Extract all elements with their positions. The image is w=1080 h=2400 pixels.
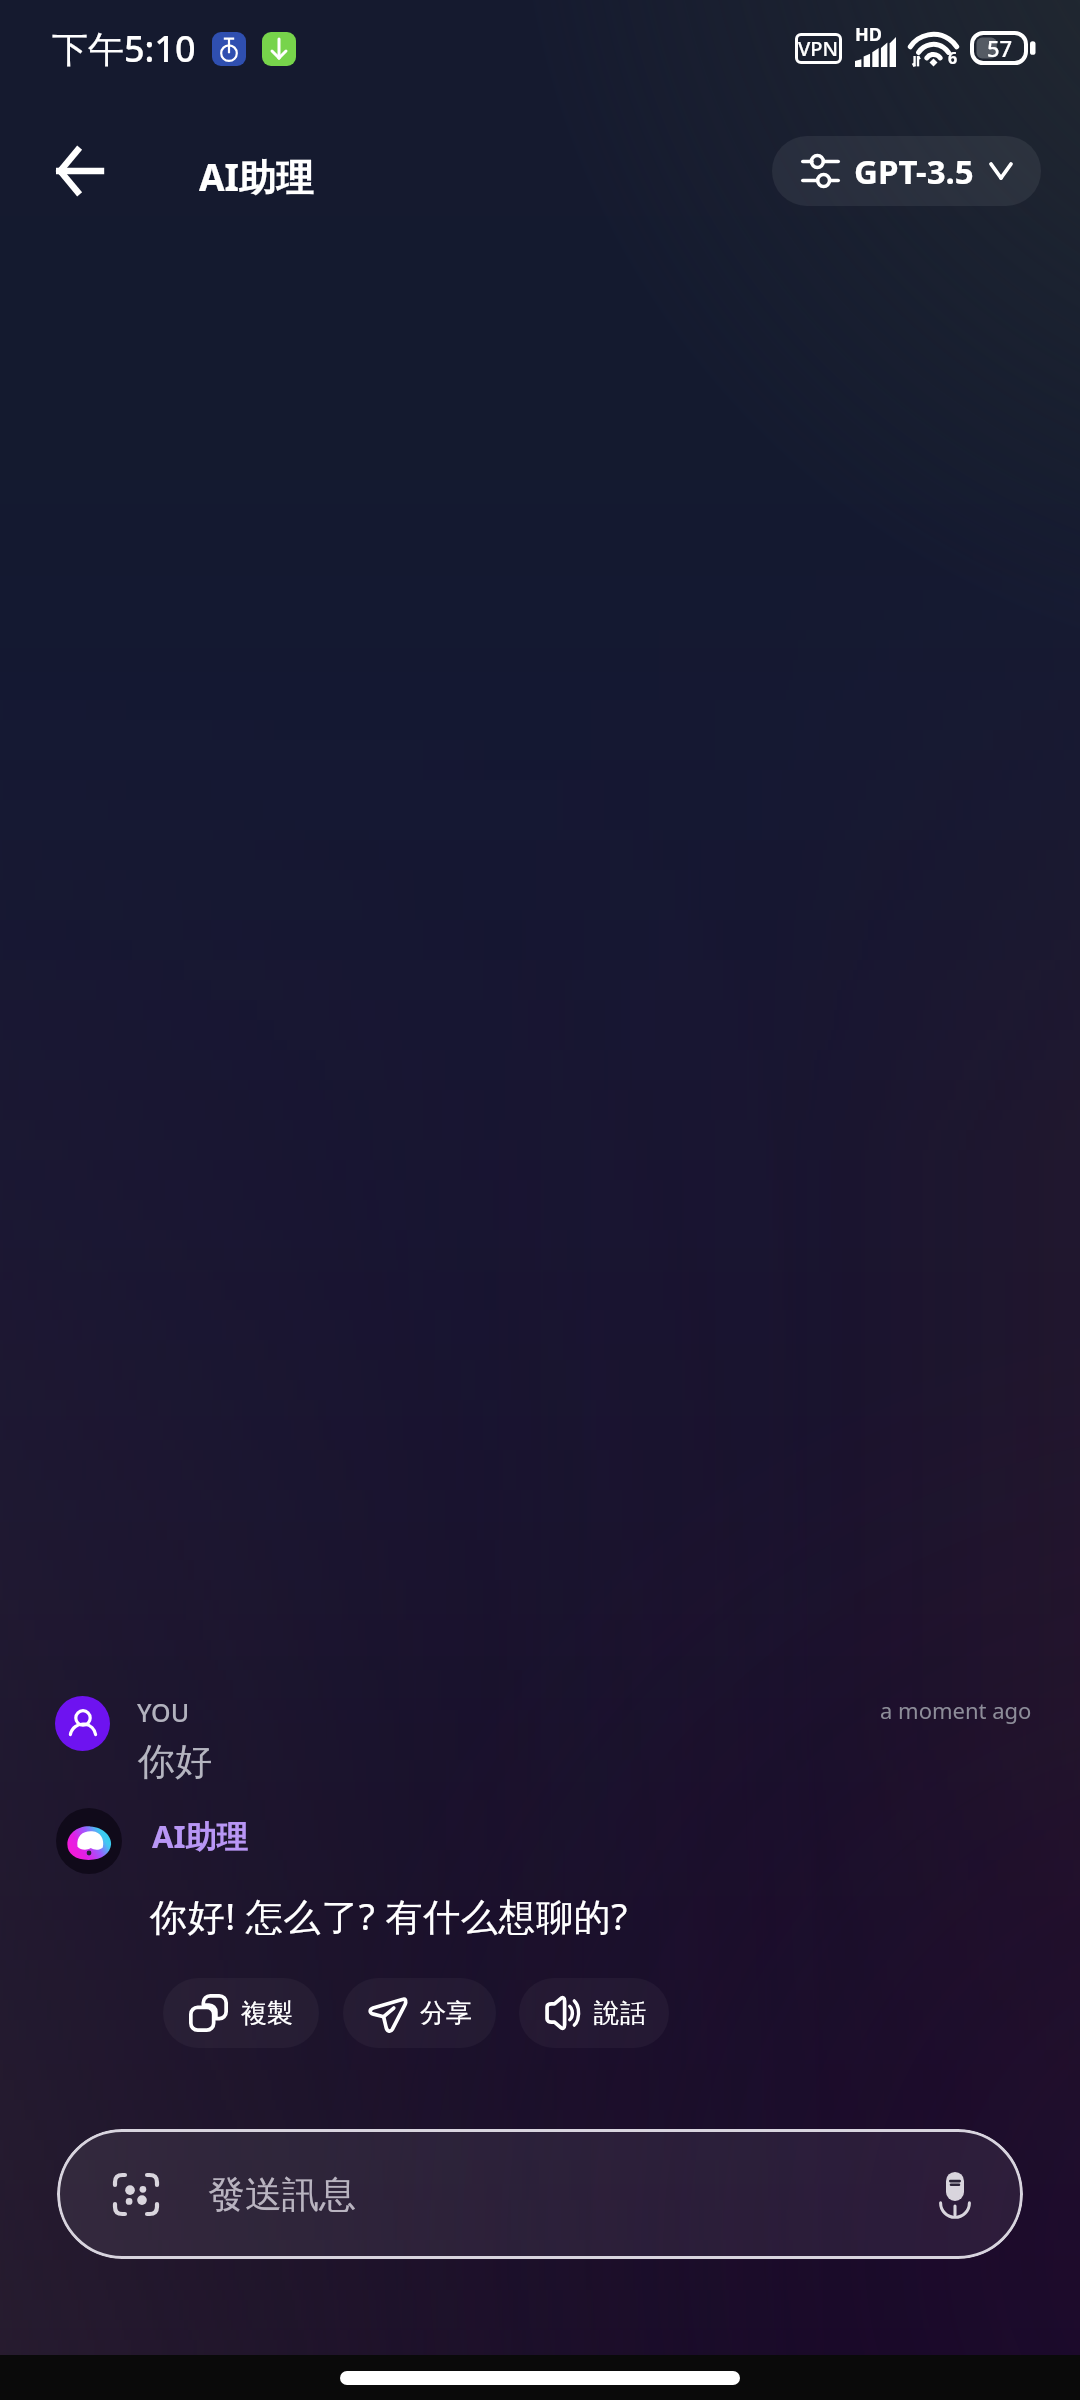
staticText: 6 [948,47,958,69]
staticText: 說話 [594,1997,646,2030]
staticText: 57 [987,33,1013,63]
staticText: YOU [137,1695,190,1729]
staticText: a moment ago [880,1695,1032,1725]
staticText: VPN [798,35,839,62]
button[interactable]: Back [26,119,130,223]
button[interactable]: 說話 [519,1978,669,2048]
button[interactable]: 分享 [343,1978,496,2048]
staticText: 下午5:10 [52,24,196,73]
staticText: 複製 [241,1997,293,2030]
staticText: 分享 [420,1997,472,2030]
staticText: 發送訊息 [208,2171,937,2218]
staticText: 你好 [138,1738,212,1785]
staticText: 你好! 怎么了? 有什么想聊的? [150,1890,628,1941]
staticText: AI助理 [199,151,313,202]
button[interactable]: 複製 [163,1978,319,2048]
button[interactable]: GPT-3.5 [772,136,1041,206]
staticText: HD [855,22,882,47]
staticText: GPT-3.5 [854,149,974,194]
staticText: AI助理 [152,1815,248,1857]
button[interactable]: 發送訊息 [57,2129,1023,2259]
